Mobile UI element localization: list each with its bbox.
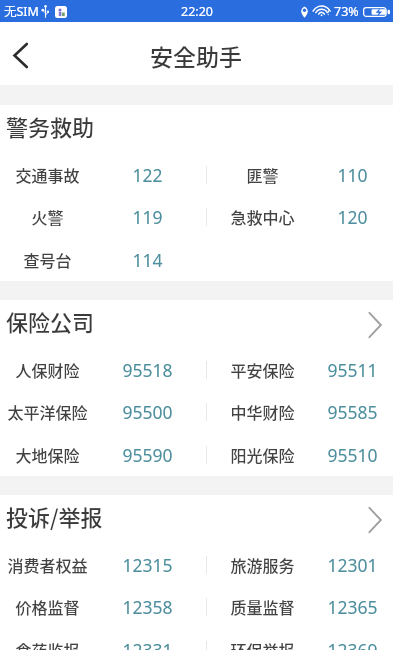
button[interactable]: 95500 <box>92 391 202 434</box>
button[interactable]: 95518 <box>92 349 202 392</box>
staticText: 匪警 <box>246 163 279 186</box>
staticText: 95585 <box>327 400 378 424</box>
staticText: 急救中心 <box>230 205 295 228</box>
staticText: 人保财险 <box>15 358 80 381</box>
staticText: 查号台 <box>23 248 72 271</box>
button[interactable]: 95590 <box>92 434 202 477</box>
staticText: 安全助手 <box>150 39 242 72</box>
button[interactable]: 中华财险 <box>207 391 317 434</box>
button[interactable]: 质量监督 <box>207 586 317 629</box>
button[interactable]: 价格监督 <box>0 586 102 629</box>
staticText: 12331 <box>122 638 173 650</box>
staticText: 平安保险 <box>230 358 295 381</box>
staticText: 火警 <box>31 205 64 228</box>
staticText: 阳光保险 <box>230 443 295 466</box>
button[interactable]: 95585 <box>297 391 393 434</box>
staticText: 110 <box>337 163 368 187</box>
staticText: 95590 <box>122 443 173 467</box>
staticText: 无SIM <box>4 3 39 20</box>
staticText: 12358 <box>122 595 173 619</box>
button[interactable]: 12358 <box>92 586 202 629</box>
button[interactable]: 110 <box>297 154 393 197</box>
staticText: 95500 <box>122 400 173 424</box>
button[interactable]: 人保财险 <box>0 349 102 392</box>
staticText: 95518 <box>122 358 173 382</box>
staticText: 旅游服务 <box>230 553 295 576</box>
staticText: 食药监报 <box>15 638 80 650</box>
button[interactable]: 返回 <box>0 33 42 77</box>
button[interactable]: 阳光保险 <box>207 434 317 477</box>
staticText: 消费者权益 <box>7 553 88 576</box>
button[interactable]: 太平洋保险 <box>0 391 102 434</box>
staticText: 价格监督 <box>15 595 80 618</box>
button[interactable]: 大地保险 <box>0 434 102 477</box>
button[interactable]: 12365 <box>297 586 393 629</box>
staticText: 120 <box>337 205 368 229</box>
staticText: 22:20 <box>181 3 213 20</box>
button[interactable]: 12331 <box>92 629 202 650</box>
staticText: 114 <box>132 248 163 272</box>
staticText: 环保举报 <box>230 638 295 650</box>
staticText: 122 <box>132 163 163 187</box>
staticText: 保险公司 <box>6 305 95 337</box>
staticText: 中华财险 <box>230 400 295 423</box>
staticText: 12369 <box>327 638 378 650</box>
button[interactable]: 12301 <box>297 544 393 587</box>
staticText: 警务救助 <box>6 110 95 142</box>
staticText: 12315 <box>122 553 173 577</box>
staticText: 119 <box>132 205 163 229</box>
staticText: 交通事故 <box>15 163 80 186</box>
button[interactable]: 急救中心 <box>207 196 317 239</box>
button[interactable]: 保险公司 <box>0 300 393 349</box>
staticText: 12365 <box>327 595 378 619</box>
button[interactable]: 119 <box>92 196 202 239</box>
button[interactable]: 食药监报 <box>0 629 102 650</box>
button[interactable]: 114 <box>92 239 202 282</box>
staticText: 95510 <box>327 443 378 467</box>
button[interactable]: 环保举报 <box>207 629 317 650</box>
button[interactable]: 旅游服务 <box>207 544 317 587</box>
button[interactable]: 消费者权益 <box>0 544 102 587</box>
staticText: 95511 <box>327 358 378 382</box>
button[interactable]: 平安保险 <box>207 349 317 392</box>
staticText: 太平洋保险 <box>7 400 88 423</box>
staticText: 73% <box>334 3 359 20</box>
button[interactable]: 95510 <box>297 434 393 477</box>
staticText: 投诉/举报 <box>6 500 103 532</box>
button[interactable]: 12315 <box>92 544 202 587</box>
button[interactable]: 交通事故 <box>0 154 102 197</box>
button[interactable]: 122 <box>92 154 202 197</box>
button[interactable]: 火警 <box>0 196 102 239</box>
button[interactable]: 查号台 <box>0 239 102 282</box>
staticText: 12301 <box>327 553 378 577</box>
button[interactable]: 匪警 <box>207 154 317 197</box>
staticText: 质量监督 <box>230 595 295 618</box>
staticText: 大地保险 <box>15 443 80 466</box>
button[interactable]: 12369 <box>297 629 393 650</box>
button[interactable]: 投诉/举报 <box>0 495 393 544</box>
button[interactable]: 95511 <box>297 349 393 392</box>
button[interactable]: 120 <box>297 196 393 239</box>
